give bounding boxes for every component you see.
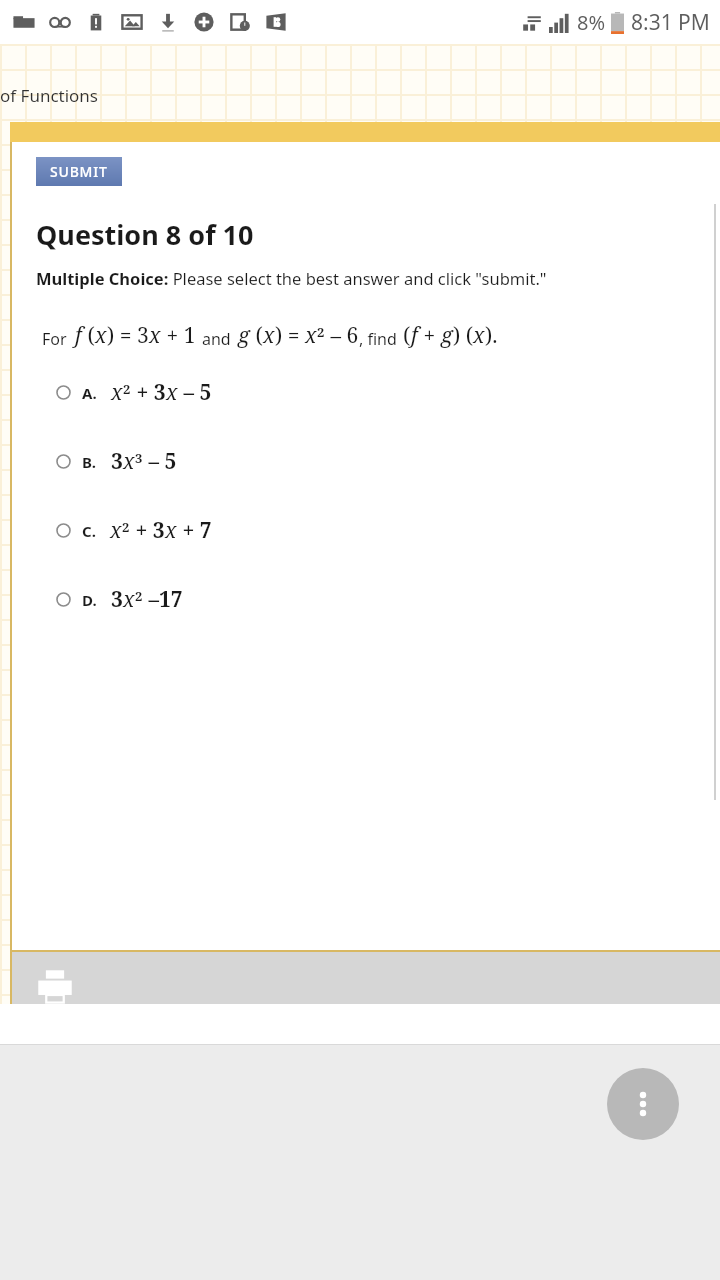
staticText: x — [111, 378, 123, 407]
staticText: D. — [82, 590, 97, 610]
staticText: – 5 — [178, 378, 212, 407]
button[interactable]: Print — [36, 968, 74, 1006]
staticText: x — [305, 321, 317, 350]
button[interactable]: B. — [10, 447, 720, 476]
staticText: x — [149, 321, 161, 350]
staticText: – 6 — [325, 321, 359, 350]
staticText: x — [95, 321, 107, 350]
staticText: ) = 3 — [107, 321, 149, 350]
staticText: 8% — [577, 9, 606, 36]
staticText: SUBMIT — [50, 162, 108, 181]
button[interactable]: D. — [10, 585, 720, 614]
staticText: x — [165, 516, 177, 545]
staticText: ( — [82, 321, 95, 350]
staticText: 8:31 PM — [631, 8, 710, 37]
staticText: – 5 — [143, 447, 177, 476]
staticText: + 3 — [130, 516, 165, 545]
staticText: C. — [82, 521, 96, 541]
staticText: and — [202, 328, 231, 350]
staticText: , find — [359, 328, 397, 350]
staticText: For — [42, 328, 71, 350]
button[interactable]: SUBMIT — [36, 157, 122, 186]
staticText: of Functions — [0, 84, 99, 107]
button[interactable]: C. — [10, 516, 720, 545]
staticText: 3 — [111, 447, 123, 476]
staticText: 2 — [122, 518, 130, 536]
staticText: x — [123, 447, 135, 476]
staticText: f — [411, 321, 418, 350]
staticText: Question 8 of 10 — [36, 216, 254, 253]
staticText: ) = — [275, 321, 305, 350]
staticText: x — [263, 321, 275, 350]
staticText: Multiple Choice: Please select the best … — [36, 267, 547, 289]
staticText: x — [166, 378, 178, 407]
staticText: + 7 — [177, 516, 212, 545]
staticText: 3 — [135, 449, 143, 467]
staticText: 3 — [111, 585, 123, 614]
staticText: ) ( — [453, 321, 473, 350]
staticText: + 3 — [131, 378, 166, 407]
staticText: + — [418, 321, 441, 350]
staticText: A. — [82, 383, 97, 403]
staticText: f — [75, 321, 82, 350]
staticText: x — [110, 516, 122, 545]
staticText: 2 — [135, 587, 143, 605]
staticText: x — [123, 585, 135, 614]
staticText: 2 — [317, 323, 325, 341]
button[interactable]: More options — [607, 1068, 679, 1140]
staticText: 2 — [123, 380, 131, 398]
staticText: g — [238, 321, 250, 350]
staticText: ). — [485, 321, 498, 350]
staticText: ( — [403, 321, 411, 350]
staticText: –17 — [143, 585, 183, 614]
staticText: x — [473, 321, 485, 350]
staticText: B. — [82, 452, 97, 472]
staticText: g — [441, 321, 453, 350]
staticText: + 1 — [161, 321, 196, 350]
button[interactable]: A. — [10, 378, 720, 407]
staticText: ( — [250, 321, 263, 350]
